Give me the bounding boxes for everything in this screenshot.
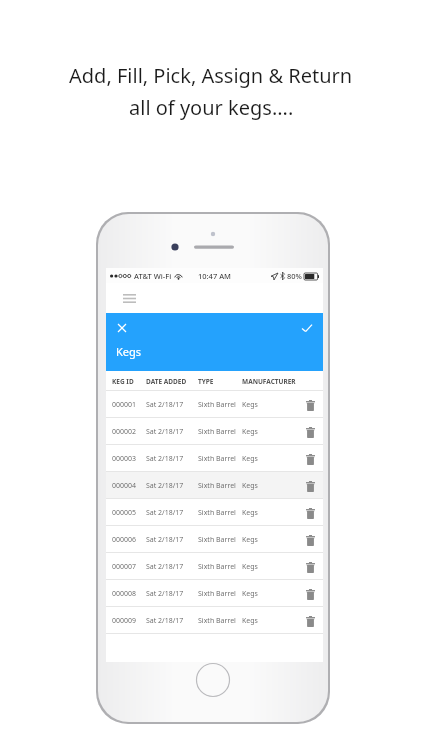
staticText: TYPE: [198, 377, 242, 386]
button[interactable]: 000006: [106, 526, 323, 553]
staticText: Sixth Barrel: [198, 535, 242, 545]
button[interactable]: Delete keg 000002: [301, 423, 319, 441]
button[interactable]: Delete keg 000004: [301, 477, 319, 495]
staticText: Kegs: [242, 400, 258, 410]
button[interactable]: Delete keg 000001: [301, 396, 319, 414]
staticText: 000004: [112, 481, 146, 491]
staticText: Kegs: [242, 535, 258, 545]
button[interactable]: 000009: [106, 607, 323, 634]
staticText: Kegs: [242, 454, 258, 464]
staticText: Kegs: [242, 562, 258, 572]
staticText: Sat 2/18/17: [146, 562, 198, 572]
staticText: Kegs: [242, 481, 258, 491]
button[interactable]: Delete keg 000008: [301, 585, 319, 603]
staticText: Kegs: [116, 344, 142, 359]
button[interactable]: Delete keg 000003: [301, 450, 319, 468]
button[interactable]: Delete keg 000005: [301, 504, 319, 522]
button[interactable]: 000005: [106, 499, 323, 526]
staticText: Sixth Barrel: [198, 454, 242, 464]
button[interactable]: 000004: [106, 472, 323, 499]
staticText: Sat 2/18/17: [146, 400, 198, 410]
staticText: Kegs: [242, 427, 258, 437]
staticText: Sixth Barrel: [198, 481, 242, 491]
staticText: Sat 2/18/17: [146, 454, 198, 464]
staticText: AT&T Wi-Fi: [134, 271, 172, 281]
staticText: Add, Fill, Pick, Assign & Return: [69, 62, 353, 89]
button[interactable]: 000001: [106, 391, 323, 418]
button[interactable]: Done: [296, 317, 318, 339]
button[interactable]: 000002: [106, 418, 323, 445]
button[interactable]: 000008: [106, 580, 323, 607]
button[interactable]: Menu: [118, 287, 140, 309]
staticText: 000003: [112, 454, 146, 464]
staticText: KEG ID: [112, 377, 146, 386]
button[interactable]: 000003: [106, 445, 323, 472]
staticText: 10:47 AM: [198, 271, 231, 281]
button[interactable]: Close: [111, 317, 133, 339]
button[interactable]: Delete keg 000009: [301, 612, 319, 630]
staticText: Sixth Barrel: [198, 427, 242, 437]
staticText: Sat 2/18/17: [146, 508, 198, 518]
staticText: 80%: [287, 271, 302, 281]
staticText: Sat 2/18/17: [146, 589, 198, 599]
staticText: Sat 2/18/17: [146, 616, 198, 626]
button[interactable]: 000007: [106, 553, 323, 580]
staticText: Sixth Barrel: [198, 589, 242, 599]
staticText: Kegs: [242, 589, 258, 599]
staticText: 000006: [112, 535, 146, 545]
staticText: Sixth Barrel: [198, 400, 242, 410]
staticText: Sat 2/18/17: [146, 481, 198, 491]
staticText: Sixth Barrel: [198, 508, 242, 518]
staticText: Kegs: [242, 616, 258, 626]
button[interactable]: Delete keg 000007: [301, 558, 319, 576]
staticText: Sixth Barrel: [198, 616, 242, 626]
staticText: all of your kegs....: [129, 94, 294, 121]
staticText: MANUFACTURER: [242, 377, 296, 386]
staticText: Kegs: [242, 508, 258, 518]
staticText: 000001: [112, 400, 146, 410]
button[interactable]: Delete keg 000006: [301, 531, 319, 549]
staticText: DATE ADDED: [146, 377, 198, 386]
staticText: 000007: [112, 562, 146, 572]
staticText: Sat 2/18/17: [146, 427, 198, 437]
staticText: Sat 2/18/17: [146, 535, 198, 545]
staticText: 000005: [112, 508, 146, 518]
staticText: 000009: [112, 616, 146, 626]
staticText: 000008: [112, 589, 146, 599]
staticText: 000002: [112, 427, 146, 437]
staticText: Sixth Barrel: [198, 562, 242, 572]
